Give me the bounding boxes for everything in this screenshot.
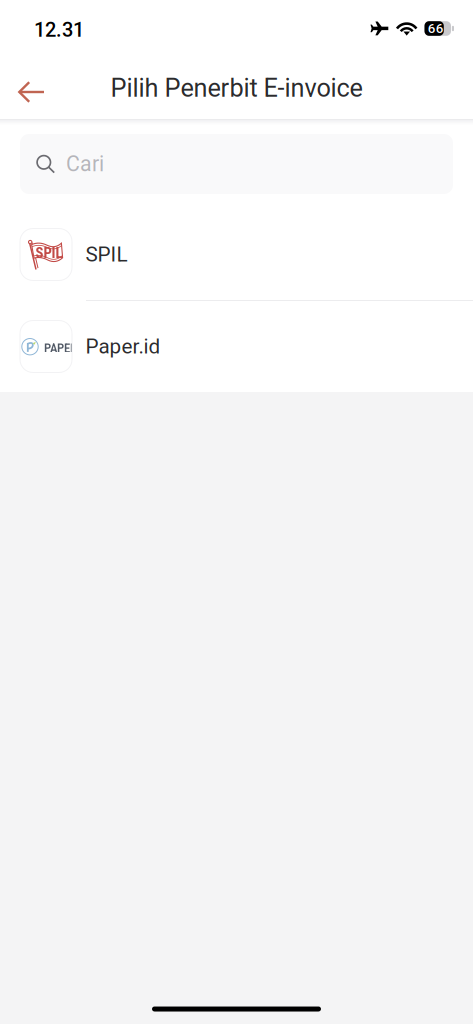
button[interactable]: Cari	[20, 134, 453, 194]
staticText: SPIL	[85, 242, 127, 267]
staticText: Cari	[66, 151, 104, 176]
staticText: SPIL	[35, 244, 62, 261]
staticText: Paper.id	[85, 334, 160, 359]
button[interactable]: PAPER	[0, 301, 473, 392]
staticText: PAPER	[44, 341, 77, 355]
button[interactable]: SPIL	[0, 209, 473, 301]
staticText: Pilih Penerbit E-invoice	[110, 73, 362, 103]
staticText: 12.31	[34, 18, 84, 42]
button[interactable]: Back	[0, 64, 59, 112]
staticText: 66	[428, 21, 444, 36]
